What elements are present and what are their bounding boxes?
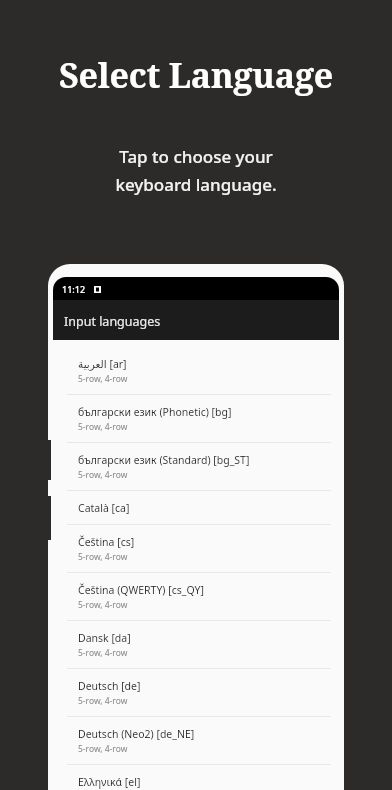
staticText: Čeština [cs]	[78, 535, 135, 549]
staticText: български език (Phonetic) [bg]	[78, 405, 232, 419]
staticText: keyboard language.	[115, 173, 277, 196]
staticText: Ελληνικά [el]	[78, 775, 141, 789]
button[interactable]: Deutsch (Neo2) [de_NE]	[53, 717, 339, 764]
button[interactable]: Ελληνικά [el]	[53, 765, 339, 790]
staticText: 5-row, 4-row	[78, 647, 128, 659]
staticText: 5-row, 4-row	[78, 373, 128, 385]
staticText: Input languages	[64, 313, 161, 330]
button[interactable]: български език (Phonetic) [bg]	[53, 395, 339, 442]
staticText: 5-row, 4-row	[78, 421, 128, 433]
staticText: Deutsch (Neo2) [de_NE]	[78, 727, 195, 741]
staticText: Dansk [da]	[78, 631, 131, 645]
button[interactable]: Deutsch [de]	[53, 669, 339, 716]
button[interactable]: български език (Standard) [bg_ST]	[53, 443, 339, 490]
staticText: 5-row, 4-row	[78, 469, 128, 481]
button[interactable]: Català [ca]	[53, 491, 339, 524]
button[interactable]: Input languages	[53, 300, 339, 340]
staticText: български език (Standard) [bg_ST]	[78, 453, 250, 467]
staticText: Tap to choose your	[119, 145, 273, 168]
staticText: Select Language	[59, 52, 333, 98]
staticText: 5-row, 4-row	[78, 599, 128, 611]
staticText: 5-row, 4-row	[78, 551, 128, 563]
staticText: 5-row, 4-row	[78, 695, 128, 707]
button[interactable]: العربية [ar]	[53, 347, 339, 394]
button[interactable]: Čeština [cs]	[53, 525, 339, 572]
button[interactable]: Dansk [da]	[53, 621, 339, 668]
button[interactable]: Čeština (QWERTY) [cs_QY]	[53, 573, 339, 620]
staticText: العربية [ar]	[78, 357, 127, 371]
staticText: 5-row, 4-row	[78, 743, 128, 755]
staticText: Català [ca]	[78, 501, 130, 515]
staticText: Deutsch [de]	[78, 679, 141, 693]
staticText: 11:12	[62, 283, 86, 295]
staticText: Čeština (QWERTY) [cs_QY]	[78, 583, 204, 597]
